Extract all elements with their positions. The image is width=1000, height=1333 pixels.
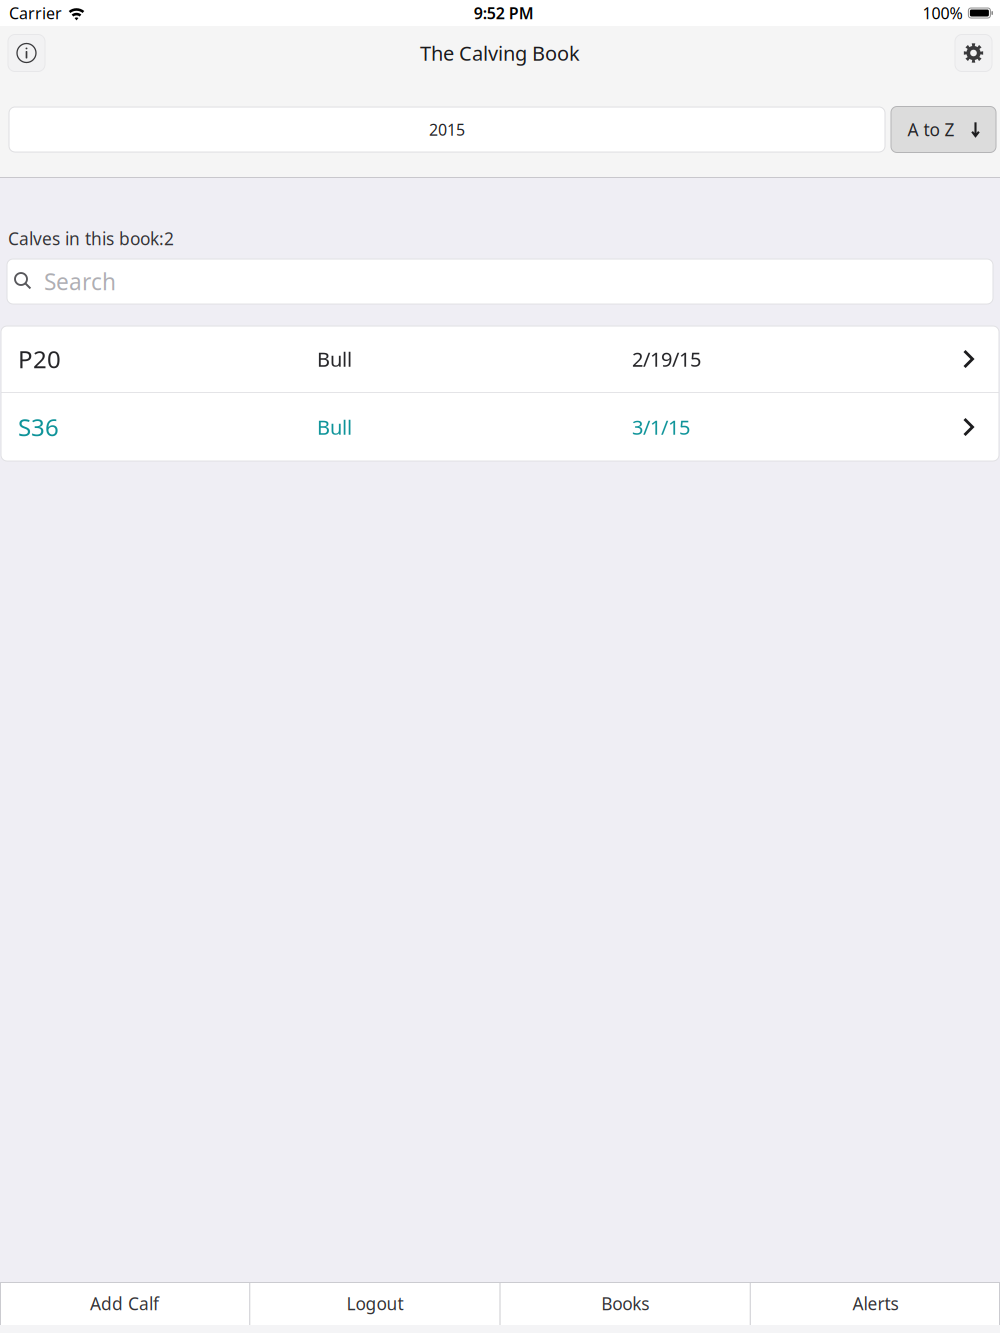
staticText: Alerts	[852, 1292, 898, 1315]
staticText: P20	[18, 343, 61, 375]
staticText: Bull	[317, 414, 352, 440]
staticText: A to Z	[907, 118, 954, 141]
staticText: Add Calf	[90, 1292, 159, 1315]
staticText: Books	[601, 1292, 649, 1315]
button[interactable]: S36	[1, 393, 999, 461]
staticText: 3/1/15	[632, 414, 690, 440]
staticText: 2015	[429, 119, 465, 140]
button[interactable]: Settings	[955, 34, 992, 71]
staticText: The Calving Book	[420, 40, 580, 66]
staticText: 9:52 PM	[474, 2, 534, 24]
button[interactable]: Add Calf	[0, 1282, 249, 1325]
staticText: 2/19/15	[632, 346, 701, 372]
button[interactable]: A to Z	[891, 106, 996, 152]
button[interactable]: Books	[500, 1282, 750, 1325]
staticText: S36	[18, 411, 59, 443]
staticText: Calves in this book:2	[8, 227, 174, 250]
staticText: Search	[44, 266, 116, 297]
staticText: Logout	[346, 1292, 403, 1315]
button[interactable]: Alerts	[751, 1282, 1000, 1325]
staticText: Bull	[317, 346, 352, 372]
button[interactable]: Info	[8, 34, 45, 71]
staticText: Carrier	[9, 2, 62, 24]
button[interactable]: P20	[1, 326, 999, 392]
staticText: 100%	[922, 2, 962, 24]
button[interactable]: 2015	[9, 107, 885, 152]
button[interactable]: Logout	[250, 1282, 499, 1325]
